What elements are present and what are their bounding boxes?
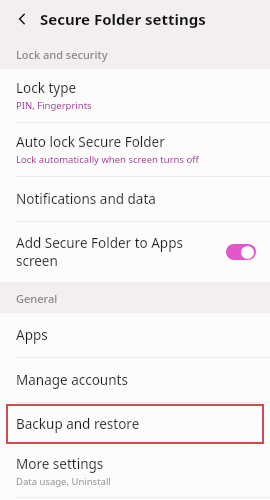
button[interactable]: Notifications and data — [0, 177, 270, 221]
staticText: Lock type — [16, 79, 77, 97]
button[interactable]: Auto lock Secure Folder — [0, 123, 270, 176]
button[interactable]: More settings — [0, 446, 270, 497]
staticText: Add Secure Folder to Apps screen — [16, 234, 218, 270]
staticText: General — [16, 291, 58, 306]
button[interactable]: Back — [10, 7, 34, 31]
staticText: Lock and security — [16, 47, 108, 62]
staticText: PIN, Fingerprints — [16, 99, 92, 112]
staticText: Manage accounts — [16, 371, 128, 389]
staticText: Apps — [16, 326, 48, 344]
staticText: Notifications and data — [16, 190, 156, 208]
button[interactable]: Manage accounts — [0, 358, 270, 402]
button[interactable]: Add Secure Folder to Apps screen — [0, 222, 270, 282]
staticText: Lock automatically when screen turns off — [16, 153, 199, 166]
staticText: More settings — [16, 455, 104, 473]
button[interactable]: Add Secure Folder to Apps screen toggle — [226, 244, 256, 260]
button[interactable]: Backup and restore — [6, 404, 264, 444]
staticText: Data usage, Uninstall — [16, 475, 111, 488]
staticText: Backup and restore — [16, 415, 140, 433]
staticText: Auto lock Secure Folder — [16, 133, 165, 151]
button[interactable]: Apps — [0, 313, 270, 357]
staticText: Secure Folder settings — [40, 9, 206, 29]
button[interactable]: Lock type — [0, 69, 270, 122]
